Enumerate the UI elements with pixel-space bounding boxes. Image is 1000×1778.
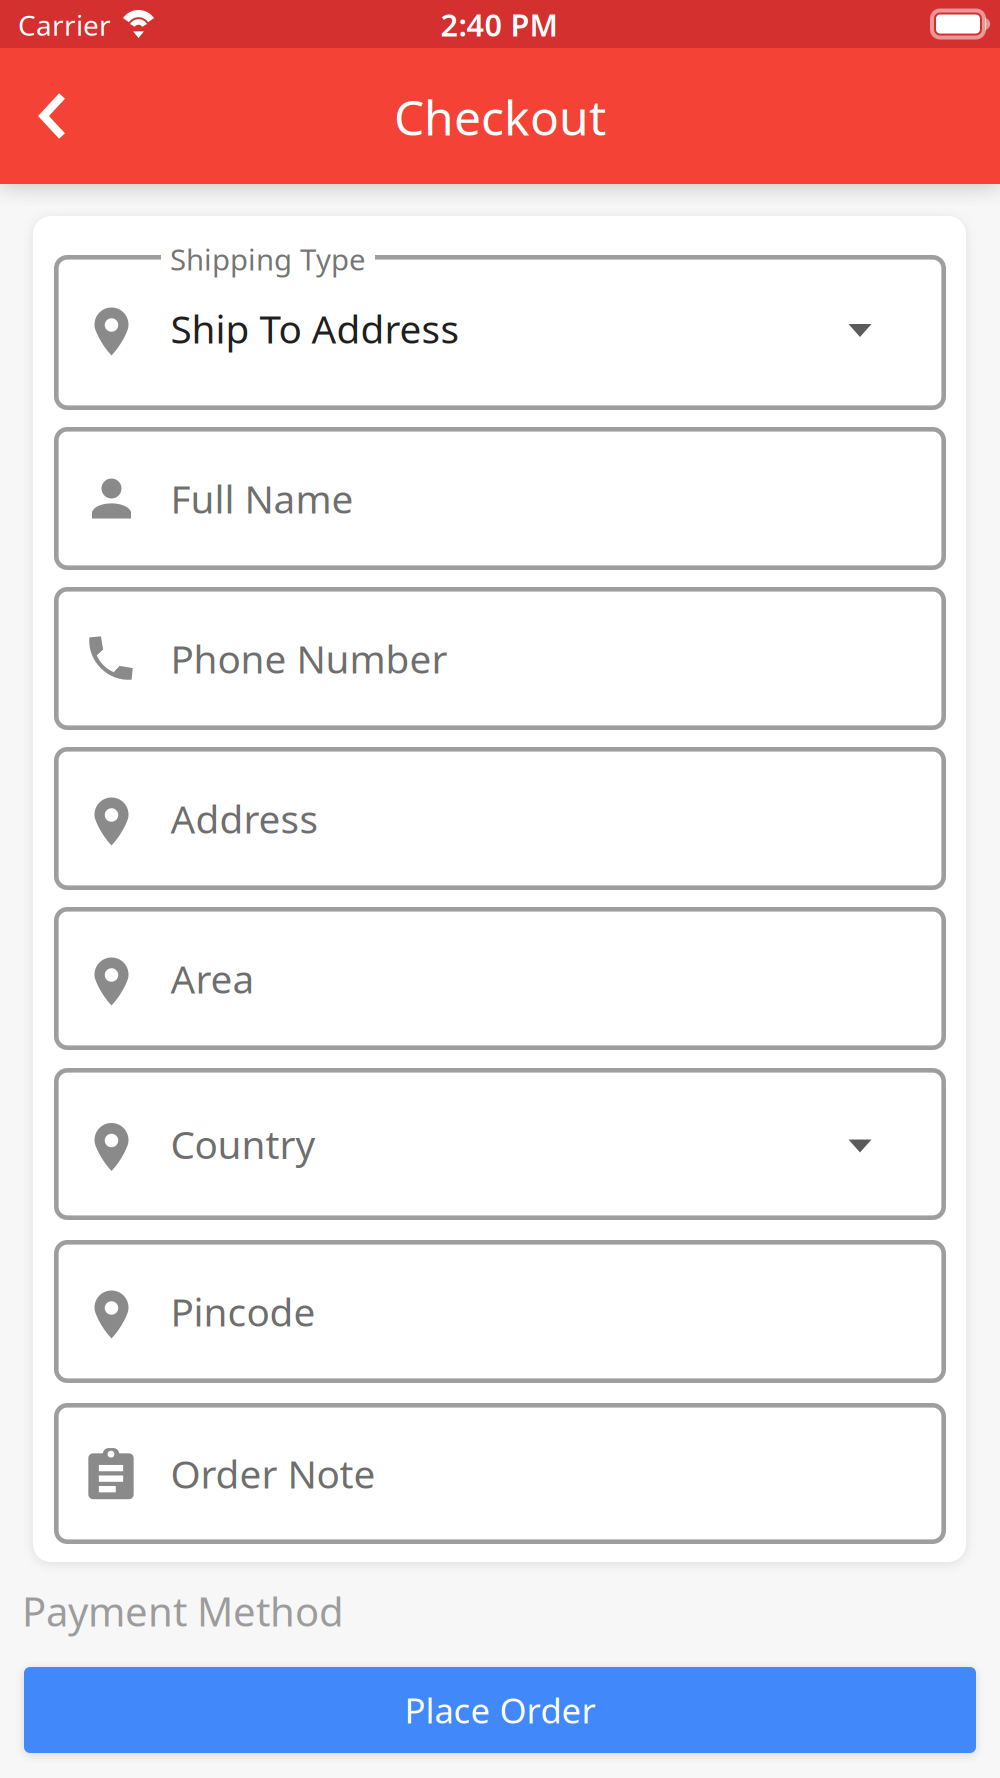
staticText: Carrier — [18, 6, 111, 44]
staticText: Country — [170, 1118, 315, 1170]
staticText: Ship To Address — [170, 303, 459, 354]
button[interactable]: Address — [54, 747, 946, 890]
staticText: Full Name — [170, 473, 353, 524]
button[interactable]: Ship To Address — [54, 255, 946, 410]
staticText: Address — [170, 793, 318, 844]
staticText: Shipping Type — [170, 239, 366, 278]
button[interactable]: Phone Number — [54, 587, 946, 730]
staticText: Checkout — [394, 85, 606, 149]
button[interactable]: Area — [54, 907, 946, 1050]
staticText: Phone Number — [170, 633, 447, 684]
button[interactable]: Full Name — [54, 427, 946, 570]
staticText: Payment Method — [22, 1584, 344, 1637]
staticText: Area — [170, 953, 254, 1004]
staticText: Order Note — [170, 1448, 375, 1499]
staticText: Pincode — [170, 1286, 315, 1337]
button[interactable]: Place Order — [24, 1667, 976, 1753]
button[interactable]: Order Note — [54, 1403, 946, 1544]
staticText: Place Order — [404, 1687, 595, 1733]
button[interactable]: Back — [15, 66, 91, 166]
staticText: 2:40 PM — [440, 4, 557, 45]
button[interactable]: Country — [54, 1068, 946, 1220]
button[interactable]: Pincode — [54, 1240, 946, 1383]
